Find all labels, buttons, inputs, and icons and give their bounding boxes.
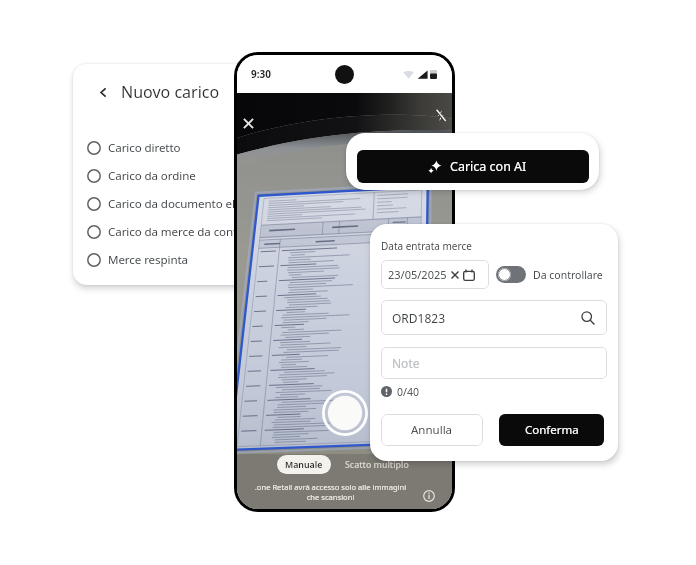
button[interactable]: Scatto multiplo (341, 455, 413, 474)
button[interactable]: ORD1823 (381, 300, 607, 335)
button[interactable]: Carico da ordine (73, 162, 311, 190)
staticText: Merce respinta (108, 252, 188, 268)
staticText: ORD1823 (392, 310, 604, 326)
staticText: Scatto multiplo (345, 459, 409, 471)
staticText: .one Retail avrà accesso solo alle immag… (253, 482, 408, 502)
button[interactable]: Carico da documento elettronico (73, 190, 311, 218)
other: Pick date (463, 269, 475, 281)
staticText: Carico diretto (108, 140, 181, 156)
staticText: Da controllare (533, 268, 603, 282)
other: Search (581, 311, 595, 325)
button[interactable]: Note (381, 347, 607, 379)
staticText: Conferma (525, 422, 579, 438)
button[interactable]: Carico diretto (73, 134, 311, 162)
button[interactable]: 23/05/2025 (381, 260, 489, 289)
button[interactable]: Flash off (434, 109, 447, 122)
button[interactable]: Take photo (322, 390, 368, 436)
button[interactable]: Conferma (499, 414, 604, 446)
staticText: Carico da ordine (108, 168, 196, 184)
other: Back (96, 85, 111, 100)
button[interactable]: Info (423, 490, 435, 502)
staticText: Carica con AI (450, 158, 527, 175)
staticText: Carico da documento elettronico (108, 196, 284, 212)
button[interactable]: Carico da merce da controllare (73, 218, 311, 246)
staticText: Nuovo carico (121, 81, 220, 103)
staticText: Data entrata merce (381, 239, 472, 253)
button[interactable]: Merce respinta (73, 246, 311, 274)
button[interactable]: Carica con AI (357, 150, 589, 183)
staticText: Manuale (285, 459, 323, 471)
staticText: Annulla (411, 422, 453, 438)
staticText: 9:30 (251, 67, 271, 81)
button[interactable]: Manuale (277, 455, 331, 474)
button[interactable]: Close (243, 118, 254, 129)
button[interactable]: Annulla (381, 414, 483, 446)
button[interactable]: Back (96, 81, 210, 103)
staticText: 0/40 (397, 385, 419, 398)
staticText: 23/05/2025 (388, 267, 447, 282)
other: Clear date (451, 271, 459, 279)
button[interactable]: Da controllare (496, 260, 596, 289)
staticText: Carico da merce da controllare (108, 224, 272, 240)
staticText: Note (392, 355, 420, 371)
